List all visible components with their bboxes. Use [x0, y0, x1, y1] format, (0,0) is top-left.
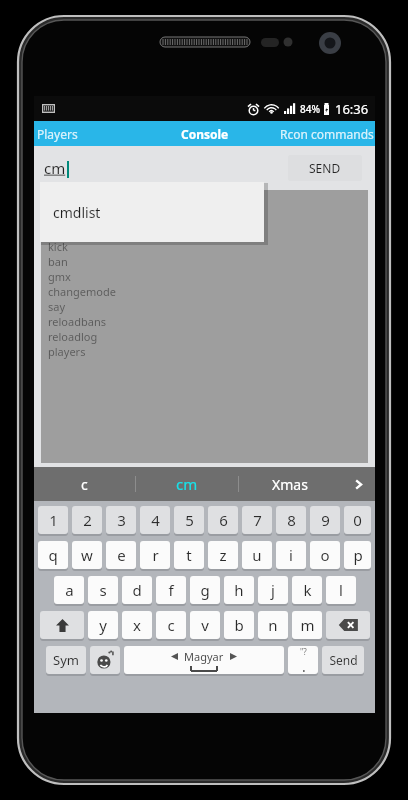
button[interactable]: i [276, 539, 306, 571]
button[interactable]: Console [181, 126, 229, 142]
button[interactable]: 2 [72, 504, 102, 536]
staticText: . [302, 657, 306, 674]
button[interactable]: 0 [344, 504, 371, 536]
staticText: Magyar [184, 649, 224, 664]
staticText: s [99, 580, 107, 600]
staticText: ban [48, 254, 68, 269]
button[interactable]: "? [288, 644, 318, 676]
staticText: u [252, 545, 262, 565]
button[interactable]: b [224, 609, 254, 641]
staticText: 6 [219, 510, 228, 530]
staticText: i [289, 545, 293, 565]
button[interactable]: 6 [208, 504, 238, 536]
button[interactable]: q [38, 539, 68, 571]
other: Emoji [88, 644, 122, 676]
button[interactable]: r [140, 539, 170, 571]
button[interactable]: g [190, 574, 220, 606]
button[interactable]: cm [136, 467, 238, 501]
button[interactable]: 9 [310, 504, 340, 536]
button[interactable] [90, 644, 120, 676]
button[interactable]: z [208, 539, 238, 571]
staticText: p [353, 545, 363, 565]
staticText: 1 [49, 510, 58, 530]
button[interactable]: s [88, 574, 118, 606]
button[interactable]: a [54, 574, 84, 606]
button[interactable]: c [34, 467, 135, 501]
button[interactable]: l [326, 574, 356, 606]
button[interactable]: cmdlist [40, 182, 264, 242]
staticText: v [201, 615, 209, 635]
button[interactable]: Sym [46, 644, 86, 676]
button[interactable]: w [72, 539, 102, 571]
staticText: h [234, 580, 244, 600]
button[interactable]: t [174, 539, 204, 571]
staticText: 9 [321, 510, 330, 530]
button[interactable]: m [292, 609, 322, 641]
button[interactable] [40, 609, 84, 641]
staticText: w [81, 545, 93, 565]
staticText: e [117, 545, 126, 565]
button[interactable]: j [258, 574, 288, 606]
other: Period [286, 644, 320, 676]
button[interactable]: 4 [140, 504, 170, 536]
staticText: k [303, 580, 312, 600]
staticText: n [268, 615, 278, 635]
button[interactable]: Send [322, 644, 364, 676]
button[interactable]: p [344, 539, 371, 571]
button[interactable]: 5 [174, 504, 204, 536]
button[interactable]: 3 [106, 504, 136, 536]
staticText: 2 [83, 510, 92, 530]
staticText: Send [329, 652, 358, 668]
other: Space, Magyar [122, 644, 286, 676]
staticText: SEND [309, 160, 341, 176]
staticText: y [99, 615, 107, 635]
staticText: cm [44, 158, 66, 178]
button[interactable]: Players [37, 126, 78, 142]
staticText: 4 [151, 510, 160, 530]
button[interactable]: v [190, 609, 220, 641]
button[interactable] [326, 609, 370, 641]
staticText: j [271, 580, 275, 600]
button[interactable]: More suggestions [341, 467, 375, 501]
staticText: "? [300, 646, 307, 657]
button[interactable]: Rcon commands [280, 126, 374, 142]
button[interactable]: k [292, 574, 322, 606]
button[interactable]: x [122, 609, 152, 641]
staticText: d [132, 580, 142, 600]
button[interactable]: 7 [242, 504, 272, 536]
button[interactable]: Xmas [239, 467, 341, 501]
staticText: players [48, 344, 86, 359]
staticText: q [48, 545, 58, 565]
button[interactable]: o [310, 539, 340, 571]
button[interactable]: Magyar [124, 644, 284, 676]
button[interactable]: 1 [38, 504, 68, 536]
staticText: 0 [353, 510, 362, 530]
button[interactable]: n [258, 609, 288, 641]
staticText: Xmas [272, 475, 308, 494]
other: Backspace [324, 609, 372, 641]
button[interactable]: c [156, 609, 186, 641]
staticText: reloadlog [48, 329, 98, 344]
staticText: 5 [185, 510, 194, 530]
staticText: c [167, 615, 175, 635]
button[interactable]: h [224, 574, 254, 606]
button[interactable]: e [106, 539, 136, 571]
button[interactable]: 8 [276, 504, 306, 536]
staticText: b [234, 615, 244, 635]
staticText: varlist [48, 209, 80, 224]
staticText: a [65, 580, 74, 600]
button[interactable]: d [122, 574, 152, 606]
button[interactable]: y [88, 609, 118, 641]
button[interactable]: SEND [288, 155, 362, 181]
staticText: cm [176, 474, 198, 494]
button[interactable]: u [242, 539, 272, 571]
staticText: 84% [300, 102, 320, 116]
staticText: c [81, 475, 88, 494]
staticText: z [219, 545, 227, 565]
staticText: f [168, 580, 174, 600]
button[interactable]: f [156, 574, 186, 606]
staticText: t [186, 545, 192, 565]
staticText: reloadbans [48, 314, 106, 329]
button[interactable]: cm [44, 158, 244, 178]
staticText: Sym [53, 651, 79, 669]
